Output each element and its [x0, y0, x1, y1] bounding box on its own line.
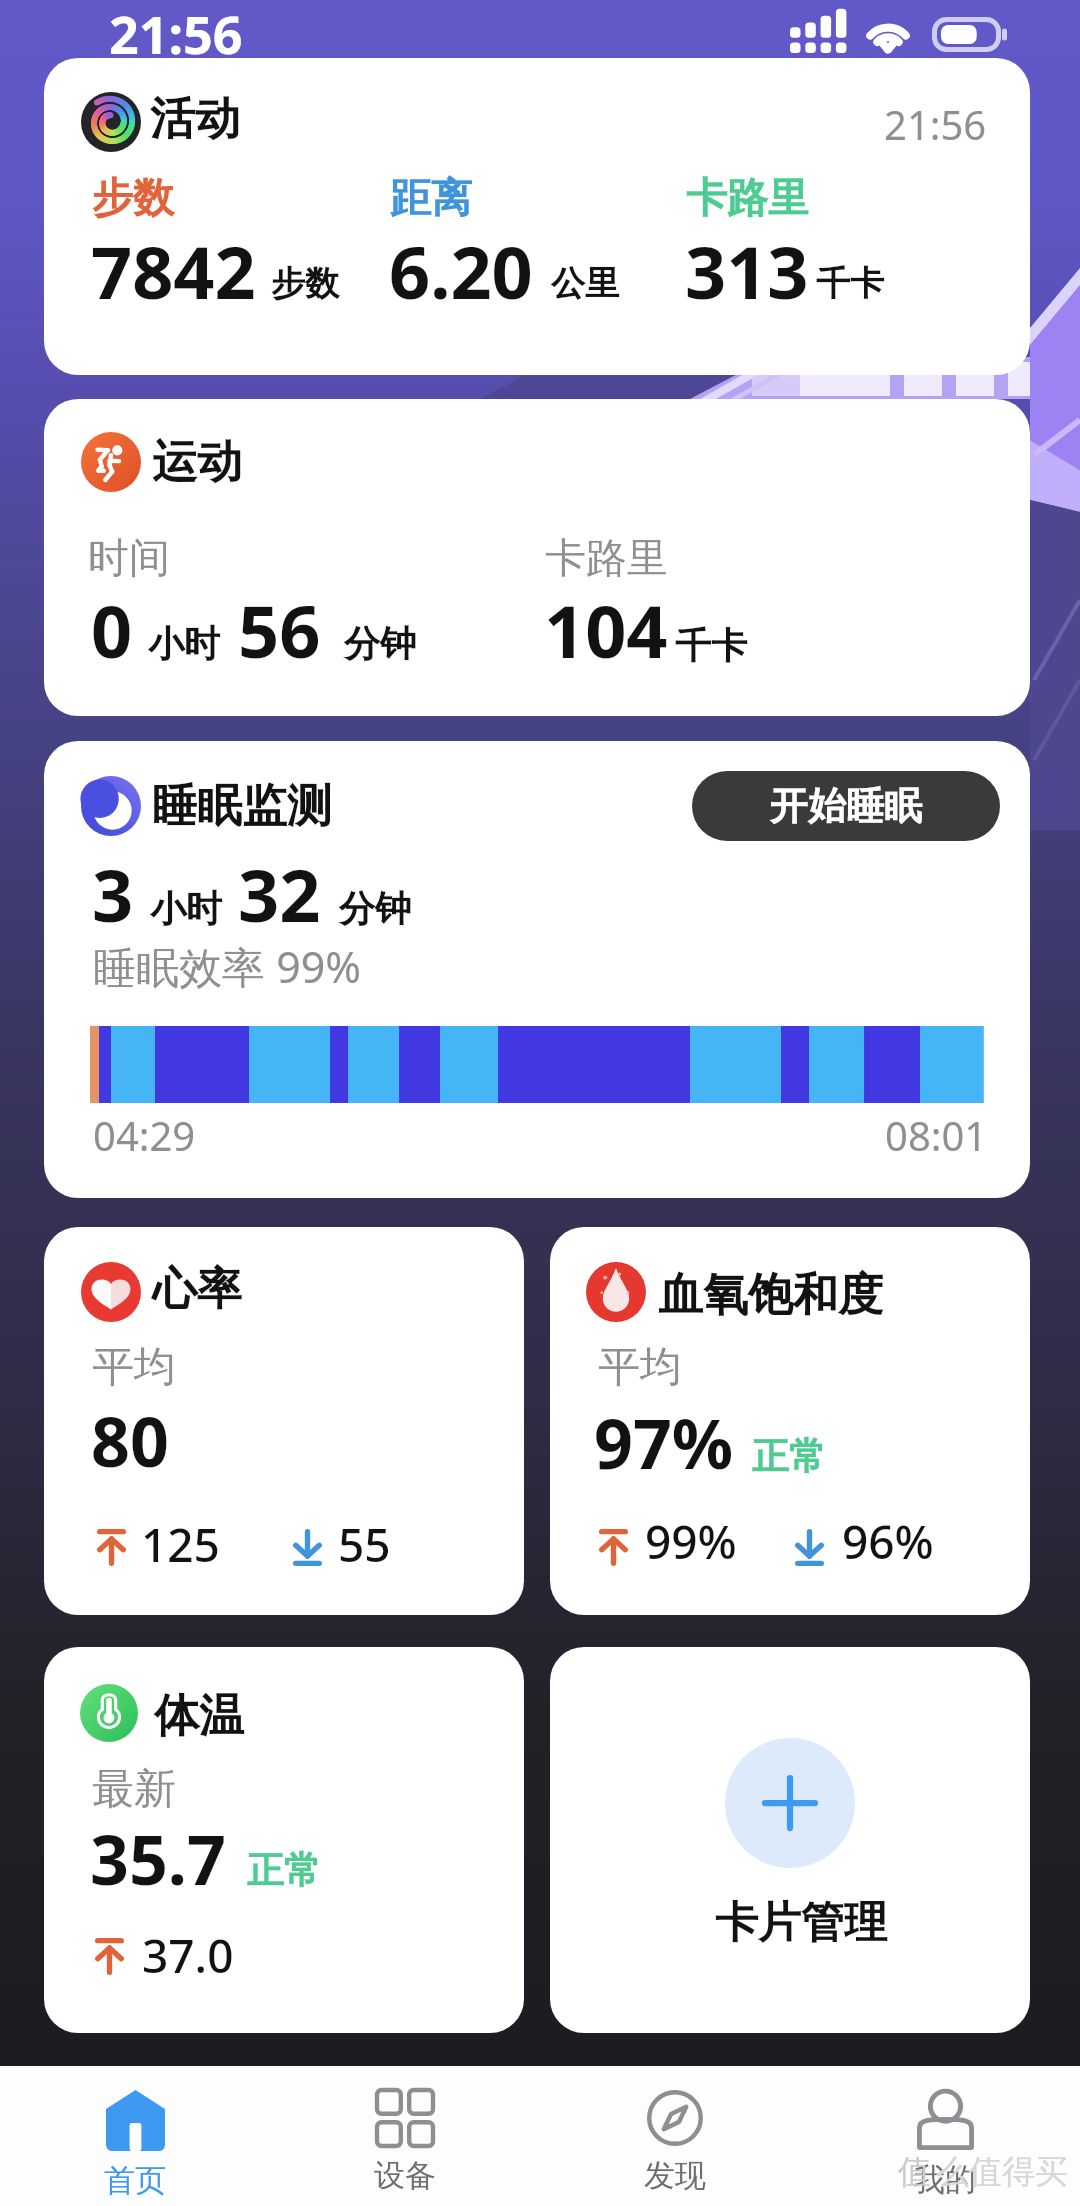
- staticText: 活动: [150, 91, 240, 148]
- staticText: 21:56: [884, 97, 987, 151]
- staticText: 千卡: [816, 262, 884, 305]
- staticText: 千卡: [675, 623, 747, 668]
- staticText: 80: [91, 1394, 169, 1487]
- staticText: 21:56: [109, 0, 243, 56]
- staticText: 分钟: [339, 886, 411, 931]
- staticText: 56: [238, 581, 321, 679]
- staticText: 卡路里: [686, 173, 809, 225]
- staticText: 55: [338, 1513, 391, 1576]
- staticText: 99%: [645, 1510, 737, 1573]
- button[interactable]: 血氧饱和度: [550, 1227, 1030, 1615]
- button[interactable]: 发现: [540, 2066, 810, 2206]
- staticText: 心率: [152, 1261, 242, 1318]
- staticText: 96%: [842, 1510, 934, 1573]
- staticText: 设备: [374, 2156, 436, 2195]
- staticText: 分钟: [344, 621, 416, 666]
- button[interactable]: 体温: [44, 1647, 524, 2033]
- button[interactable]: Add card: [725, 1738, 855, 1868]
- staticText: 卡片管理: [715, 1896, 887, 1950]
- staticText: 卡路里: [545, 533, 668, 585]
- staticText: 发现: [644, 2156, 706, 2195]
- staticText: 正常: [247, 1847, 321, 1894]
- staticText: 步数: [92, 173, 174, 225]
- staticText: 体温: [154, 1688, 244, 1745]
- staticText: 0: [91, 581, 133, 679]
- staticText: 104: [544, 581, 668, 679]
- staticText: 平均: [598, 1341, 682, 1394]
- button[interactable]: 我的: [810, 2066, 1080, 2206]
- staticText: 6.20: [389, 222, 533, 320]
- staticText: 睡眠监测: [152, 778, 332, 835]
- staticText: 313: [685, 222, 809, 320]
- staticText: 37.0: [142, 1924, 234, 1987]
- staticText: 首页: [104, 2161, 166, 2200]
- staticText: 32: [238, 845, 321, 943]
- staticText: 血氧饱和度: [658, 1267, 883, 1324]
- staticText: 04:29: [93, 1108, 196, 1162]
- button[interactable]: 心率: [44, 1227, 524, 1615]
- staticText: 我的: [914, 2160, 976, 2199]
- staticText: 开始睡眠: [770, 782, 922, 830]
- staticText: 08:01: [885, 1108, 988, 1162]
- staticText: 97%: [594, 1396, 734, 1489]
- button[interactable]: 运动: [44, 399, 1030, 716]
- staticText: 125: [141, 1513, 220, 1576]
- staticText: 正常: [752, 1433, 826, 1480]
- staticText: 步数: [271, 262, 339, 305]
- staticText: 3: [92, 845, 134, 943]
- staticText: 公里: [551, 262, 619, 305]
- staticText: 35.7: [90, 1812, 226, 1905]
- staticText: 运动: [152, 434, 242, 491]
- button[interactable]: 设备: [270, 2066, 540, 2206]
- staticText: 7842: [91, 222, 256, 320]
- button[interactable]: 首页: [0, 2066, 270, 2206]
- staticText: 最新: [92, 1763, 176, 1816]
- staticText: 距离: [390, 173, 472, 225]
- button[interactable]: 睡眠监测: [44, 741, 1030, 1198]
- button[interactable]: 开始睡眠: [692, 771, 1000, 841]
- button[interactable]: 活动: [44, 58, 1030, 375]
- staticText: 睡眠效率 99%: [93, 937, 362, 996]
- staticText: 小时: [148, 621, 220, 666]
- button[interactable]: Add card: [550, 1647, 1030, 2033]
- staticText: 值: [898, 2151, 931, 2193]
- staticText: 么值得买: [936, 2151, 1068, 2193]
- staticText: 小时: [150, 886, 222, 931]
- staticText: 时间: [88, 533, 170, 585]
- staticText: 平均: [92, 1341, 176, 1394]
